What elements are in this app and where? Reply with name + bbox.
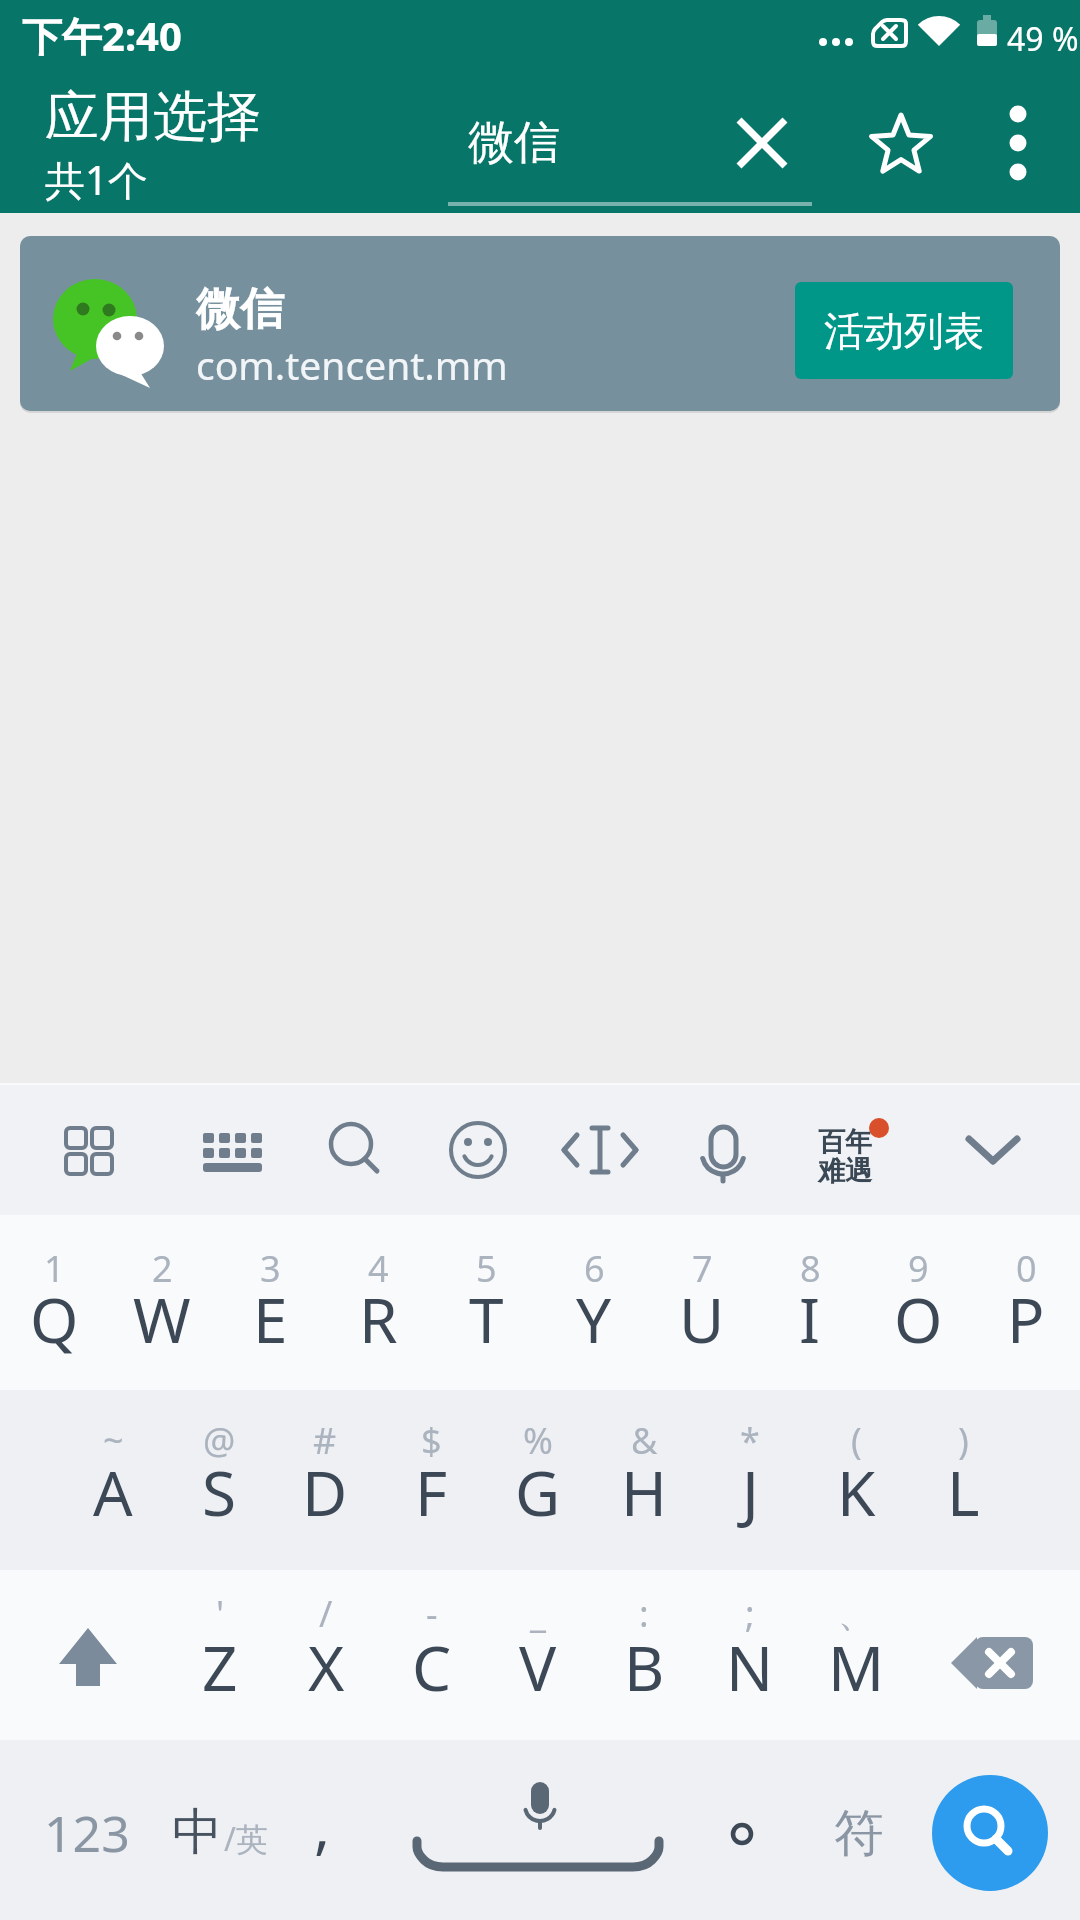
button[interactable] (423, 1085, 533, 1215)
button[interactable]: * (697, 1390, 803, 1570)
button[interactable]: 活动列表 (795, 282, 1013, 379)
staticText: ' (216, 1589, 225, 1638)
staticText: # (313, 1416, 337, 1465)
button[interactable]: 微信 (448, 100, 812, 206)
staticText: A (93, 1450, 133, 1534)
staticText: E (253, 1277, 288, 1361)
button[interactable]: 中 (160, 1773, 280, 1893)
button[interactable]: ) (910, 1390, 1016, 1570)
staticText: : (639, 1589, 649, 1638)
staticText: H (621, 1450, 667, 1534)
staticText: 5 (476, 1244, 497, 1293)
staticText: / (319, 1589, 333, 1638)
button[interactable]: # (272, 1390, 378, 1570)
staticText: I (799, 1277, 821, 1361)
staticText: @ (203, 1416, 236, 1465)
staticText: 3 (260, 1244, 281, 1293)
button[interactable]: 微信 (20, 236, 1060, 411)
staticText: Z (202, 1625, 238, 1709)
button[interactable]: 2 (108, 1215, 216, 1390)
staticText: 123 (44, 1799, 130, 1867)
staticText: P (1007, 1277, 1045, 1361)
staticText: 1 (44, 1244, 65, 1293)
staticText: V (519, 1625, 557, 1709)
staticText: ) (958, 1416, 969, 1465)
button[interactable]: / (274, 1570, 379, 1740)
staticText: N (726, 1625, 774, 1709)
staticText: 应用选择 (45, 83, 261, 151)
button[interactable] (983, 83, 1053, 203)
button[interactable]: 符 (804, 1783, 914, 1883)
button[interactable] (545, 1085, 655, 1215)
button[interactable] (932, 1608, 1052, 1718)
button[interactable]: & (591, 1390, 697, 1570)
button[interactable]: 8 (756, 1215, 864, 1390)
button[interactable] (932, 1775, 1048, 1891)
button[interactable]: ( (803, 1390, 909, 1570)
staticText: 6 (584, 1244, 605, 1293)
staticText: ; (745, 1589, 755, 1638)
button[interactable]: 3 (216, 1215, 324, 1390)
staticText: G (515, 1450, 561, 1534)
button[interactable]: 1 (0, 1215, 108, 1390)
button[interactable]: ; (698, 1570, 803, 1740)
staticText: 微信 (196, 282, 284, 337)
button[interactable] (301, 1085, 411, 1215)
button[interactable] (859, 102, 943, 186)
staticText: ( (851, 1416, 862, 1465)
button[interactable]: 7 (648, 1215, 756, 1390)
staticText: C (412, 1625, 452, 1709)
button[interactable]: 9 (864, 1215, 972, 1390)
staticText: 中 (172, 1801, 222, 1864)
button[interactable]: 、 (804, 1570, 909, 1740)
staticText: R (359, 1277, 398, 1361)
staticText: 、 (838, 1591, 874, 1636)
staticText: W (133, 1277, 191, 1361)
button[interactable]: 123 (22, 1783, 152, 1883)
staticText: D (302, 1450, 348, 1534)
staticText: 共1个 (45, 152, 148, 207)
button[interactable]: 5 (432, 1215, 540, 1390)
staticText: 符 (834, 1802, 884, 1865)
staticText: 百年 (818, 1125, 872, 1159)
staticText: 难遇 (818, 1154, 872, 1188)
button[interactable] (697, 1784, 787, 1884)
button[interactable]: - (380, 1570, 485, 1740)
staticText: % (523, 1416, 553, 1465)
staticText: 8 (800, 1244, 821, 1293)
button[interactable] (18, 1581, 158, 1731)
staticText: 下午2:40 (22, 8, 182, 63)
button[interactable]: 百年 (785, 1085, 905, 1215)
staticText: _ (530, 1589, 546, 1638)
button[interactable]: , (277, 1775, 367, 1875)
button[interactable] (938, 1085, 1048, 1215)
staticText: Y (576, 1277, 612, 1361)
button[interactable] (400, 1743, 680, 1920)
button[interactable] (177, 1085, 287, 1215)
staticText: U (679, 1277, 725, 1361)
staticText: J (742, 1450, 759, 1534)
button[interactable]: ' (168, 1570, 273, 1740)
button[interactable] (33, 1085, 143, 1215)
staticText: L (947, 1450, 980, 1534)
button[interactable]: 0 (972, 1215, 1080, 1390)
button[interactable] (668, 1085, 778, 1215)
button[interactable]: ~ (60, 1390, 166, 1570)
staticText: T (469, 1277, 504, 1361)
button[interactable]: _ (486, 1570, 591, 1740)
button[interactable]: % (485, 1390, 591, 1570)
staticText: - (426, 1589, 438, 1638)
staticText: $ (421, 1416, 442, 1465)
staticText: O (894, 1277, 943, 1361)
button[interactable]: $ (378, 1390, 484, 1570)
button[interactable] (722, 103, 802, 183)
button[interactable]: 4 (324, 1215, 432, 1390)
staticText: 7 (692, 1244, 713, 1293)
button[interactable]: @ (166, 1390, 272, 1570)
staticText: 4 (368, 1244, 389, 1293)
button[interactable]: : (592, 1570, 697, 1740)
staticText: S (202, 1450, 237, 1534)
staticText: * (740, 1416, 760, 1465)
button[interactable]: 6 (540, 1215, 648, 1390)
staticText: 9 (908, 1244, 929, 1293)
